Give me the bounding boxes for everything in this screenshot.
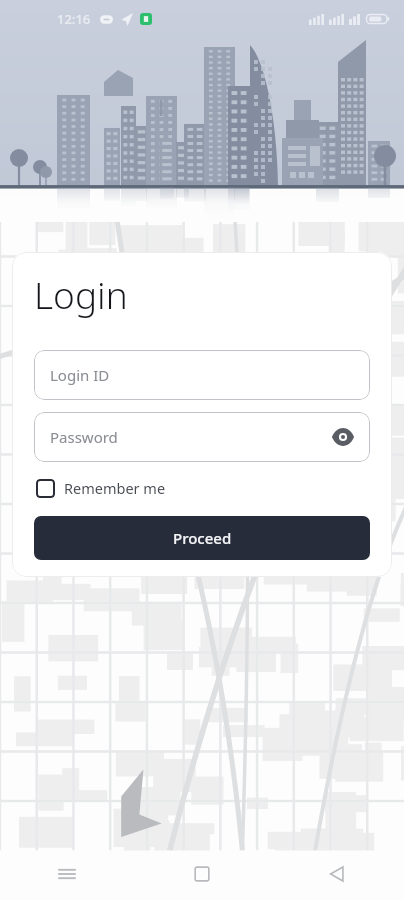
button[interactable]: Password: [34, 412, 370, 462]
staticText: Remember me: [64, 478, 166, 498]
button[interactable]: Home: [134, 848, 269, 900]
staticText: Login: [34, 269, 128, 319]
staticText: Login ID: [50, 365, 110, 385]
button[interactable]: Show password: [324, 418, 362, 456]
button[interactable]: Remember me: [34, 476, 168, 500]
staticText: Proceed: [173, 528, 232, 548]
button[interactable]: Proceed: [34, 516, 370, 560]
staticText: Password: [50, 427, 118, 447]
button[interactable]: Back: [269, 848, 404, 900]
button[interactable]: Login ID: [34, 350, 370, 400]
button[interactable]: Menu: [0, 848, 134, 900]
staticText: 12:16: [57, 10, 91, 28]
